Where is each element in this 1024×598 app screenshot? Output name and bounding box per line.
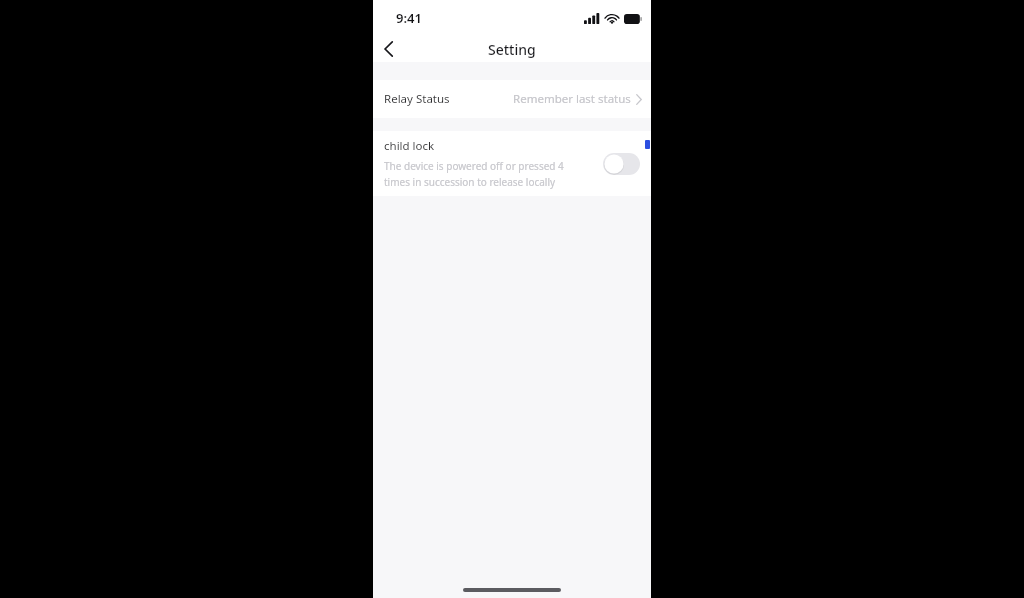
button[interactable]: child lock: [373, 131, 651, 196]
staticText: child lock: [384, 138, 435, 154]
button[interactable]: Back: [371, 36, 405, 62]
staticText: 9:41: [396, 9, 422, 27]
button[interactable]: Child lock toggle: [603, 153, 640, 175]
staticText: Setting: [488, 40, 536, 59]
staticText: Remember last status: [513, 91, 631, 107]
button[interactable]: Relay Status: [373, 80, 651, 118]
staticText: The device is powered off or pressed 4: [384, 159, 564, 173]
staticText: times in succession to release locally: [384, 175, 556, 189]
staticText: Relay Status: [384, 91, 450, 107]
